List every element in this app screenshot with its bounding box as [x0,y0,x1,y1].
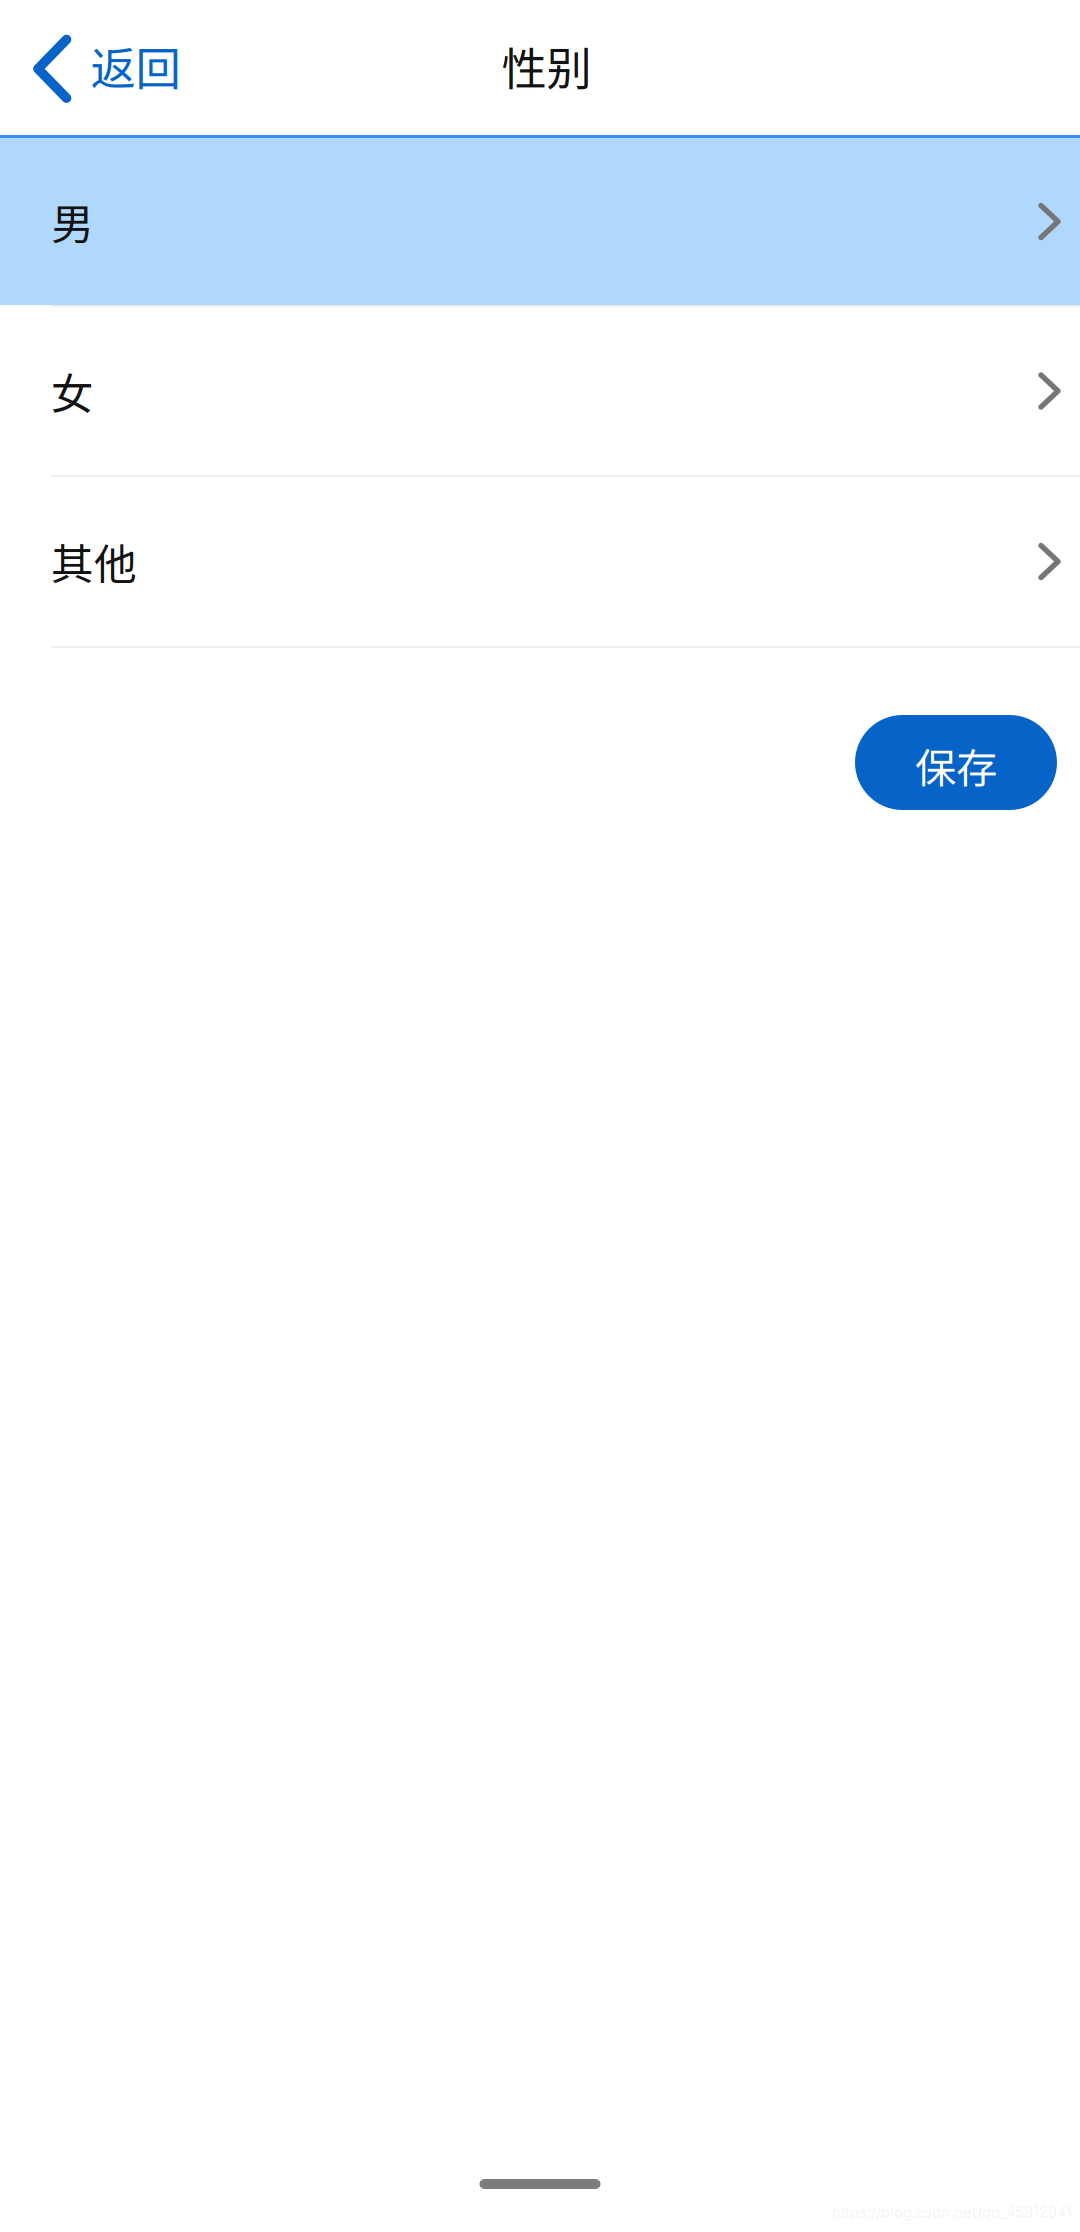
button[interactable]: 保存 [855,715,1057,810]
staticText: 男 [51,191,94,252]
staticText: 保存 [915,736,997,795]
button[interactable]: 其他 [0,477,1080,646]
staticText: 其他 [51,531,137,592]
staticText: https://blog.csdn.net/qq_45812941 [832,2203,1072,2221]
staticText: 性别 [501,33,591,98]
button[interactable]: 返回 [0,0,202,135]
button[interactable]: 男 [0,138,1080,305]
staticText: 返回 [90,33,180,98]
staticText: 女 [51,360,94,422]
button[interactable]: 女 [0,307,1080,475]
